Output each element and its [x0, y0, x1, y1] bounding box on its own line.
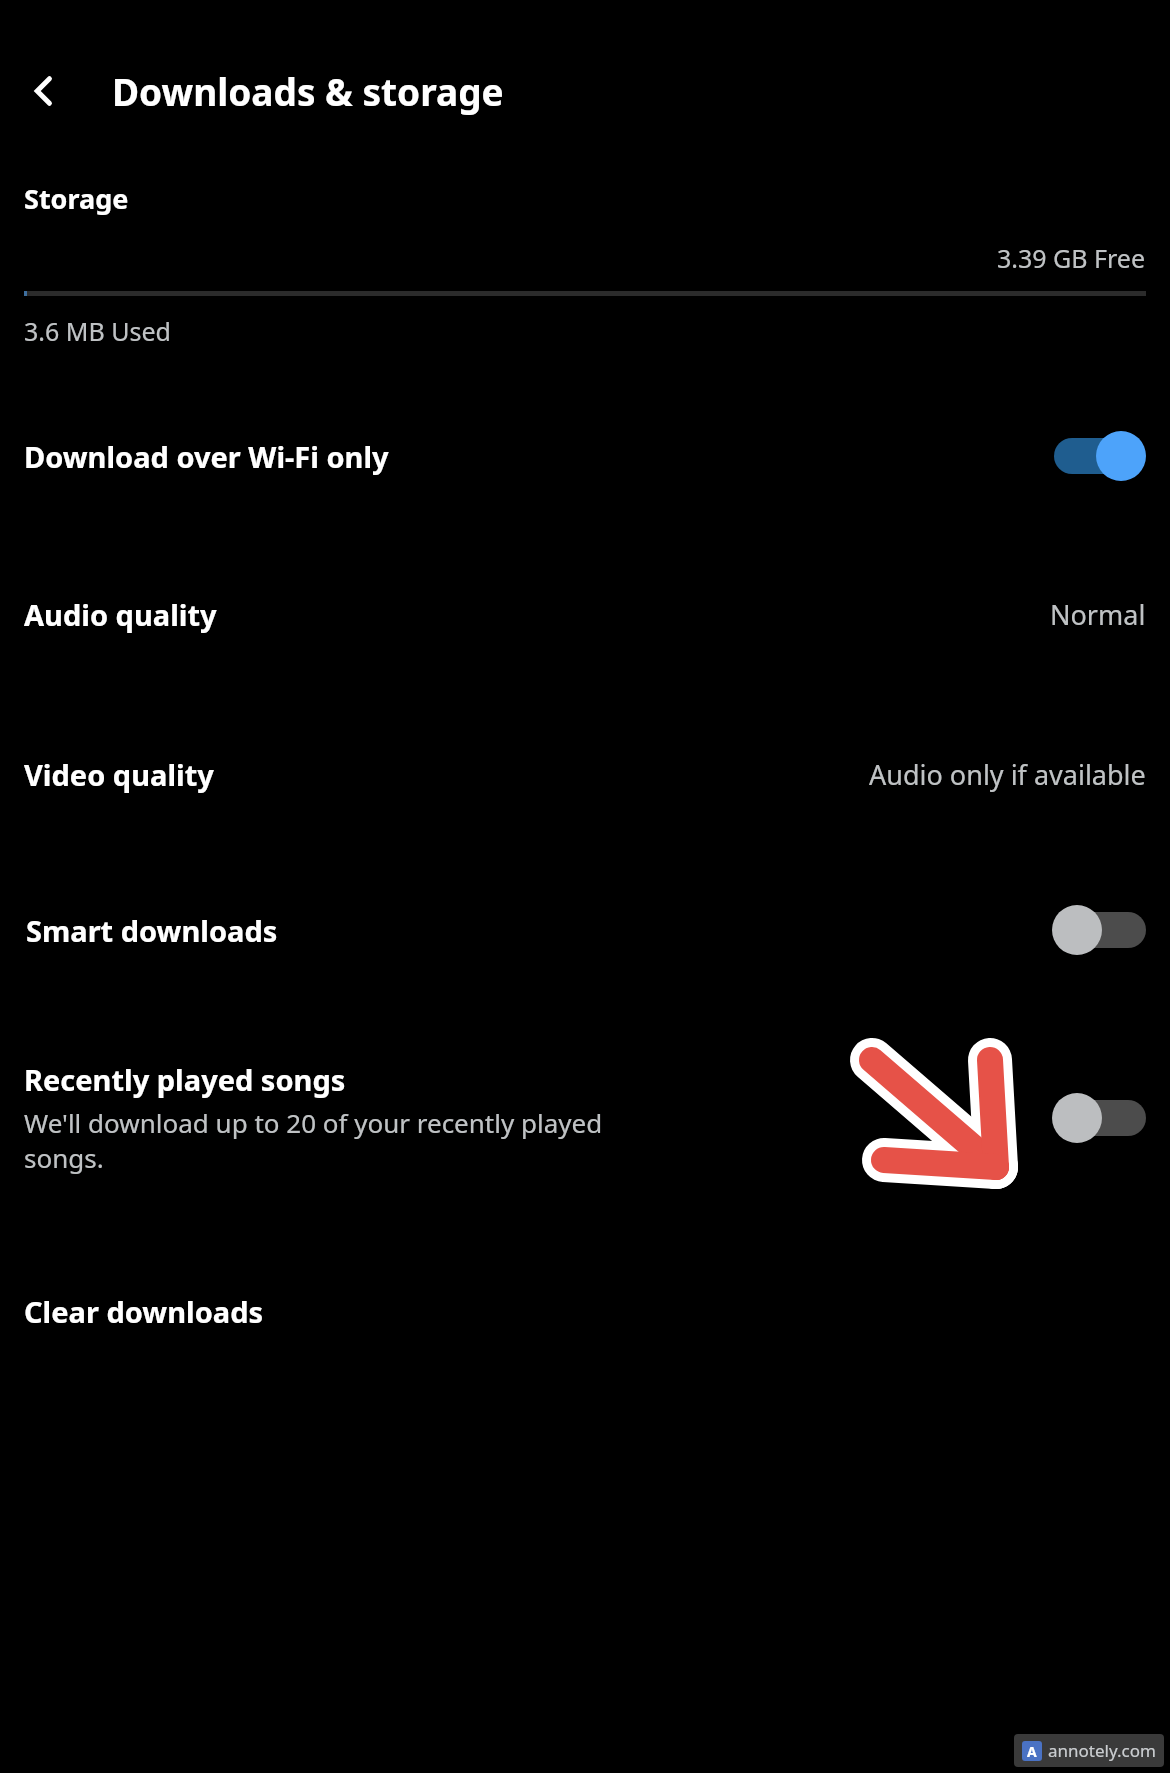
staticText: Download over Wi-Fi only	[24, 437, 1052, 476]
button[interactable]: Video quality	[0, 732, 1170, 816]
other: Smart downloads	[1052, 902, 1148, 958]
button[interactable]: Clear downloads	[0, 1271, 1170, 1351]
other: Download over Wi-Fi only	[1052, 428, 1148, 484]
staticText: Clear downloads	[24, 1292, 264, 1331]
button[interactable]: Recently played songs	[0, 1060, 1170, 1175]
staticText: annotely.com	[1048, 1739, 1156, 1762]
staticText: Recently played songs	[24, 1060, 346, 1099]
staticText: Audio quality	[24, 595, 1050, 634]
staticText: 3.39 GB Free	[997, 241, 1146, 275]
other: Recently played songs	[1052, 1090, 1148, 1146]
staticText: 3.6 MB Used	[24, 314, 171, 348]
button[interactable]: Smart downloads	[0, 884, 1170, 976]
staticText: Storage	[24, 180, 129, 217]
button[interactable]: Back	[14, 61, 74, 121]
staticText: Normal	[1050, 596, 1146, 633]
staticText: We'll download up to 20 of your recently…	[24, 1105, 603, 1175]
staticText: Smart downloads	[26, 911, 1052, 950]
staticText: A	[1027, 1742, 1037, 1761]
staticText: Downloads & storage	[112, 66, 504, 116]
staticText: Audio only if available	[869, 756, 1146, 793]
button[interactable]: Audio quality	[0, 572, 1170, 656]
button[interactable]: Download over Wi-Fi only	[0, 410, 1170, 502]
staticText: Video quality	[24, 755, 869, 794]
